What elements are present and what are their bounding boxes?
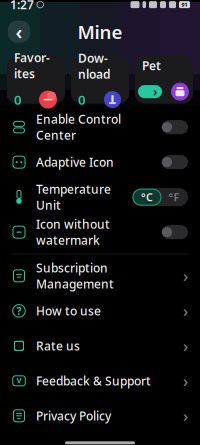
staticText: Feedback & Support <box>36 373 151 389</box>
staticText: °C <box>141 190 153 204</box>
staticText: 0 <box>78 91 86 108</box>
staticText: Download <box>78 50 111 82</box>
button[interactable]: Icon without watermark <box>0 215 200 250</box>
staticText: Subscription Management <box>36 260 114 292</box>
staticText: 1:27 <box>10 0 34 13</box>
staticText: 0 <box>14 91 22 108</box>
staticText: › <box>183 370 188 391</box>
staticText: › <box>183 265 188 286</box>
button[interactable]: Adaptive Icon <box>0 145 200 180</box>
button[interactable]: Subscription Management <box>0 258 200 293</box>
button[interactable]: Privacy Policy <box>0 398 200 433</box>
staticText: Favorites <box>14 50 50 82</box>
staticText: Enable Control Center <box>36 111 121 143</box>
staticText: ? <box>16 304 21 318</box>
button[interactable]: Temperature Unit <box>0 180 200 215</box>
button[interactable]: Enable Control Center <box>0 110 200 145</box>
staticText: Privacy Policy <box>36 408 111 424</box>
staticText: Mine <box>77 19 122 44</box>
staticText: 91 <box>181 1 187 8</box>
button[interactable]: Rate us <box>0 328 200 363</box>
button[interactable]: Favorites <box>7 56 65 104</box>
staticText: › <box>183 335 188 356</box>
staticText: Rate us <box>36 338 80 354</box>
staticText: How to use <box>36 303 101 319</box>
button[interactable]: Back <box>8 18 30 45</box>
staticText: °F <box>168 190 179 204</box>
staticText: v <box>16 373 21 386</box>
button[interactable]: °F <box>161 189 187 205</box>
staticText: › <box>183 405 188 426</box>
button[interactable]: v <box>0 363 200 398</box>
button[interactable]: °C <box>133 189 161 205</box>
staticText: Adaptive Icon <box>36 154 114 170</box>
staticText: ‹ <box>15 18 22 45</box>
staticText: Pet <box>142 58 161 74</box>
staticText: Icon without watermark <box>36 216 110 248</box>
staticText: › <box>153 84 157 100</box>
button[interactable]: Download <box>71 56 129 104</box>
staticText: › <box>183 300 188 321</box>
button[interactable]: ? <box>0 293 200 328</box>
button[interactable]: Pet <box>135 56 193 104</box>
staticText: Temperature Unit <box>36 181 111 213</box>
